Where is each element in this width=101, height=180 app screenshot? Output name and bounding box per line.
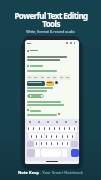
- staticText: Note Keep - Your Smart Notebook: [18, 170, 83, 175]
- button[interactable]: [23, 36, 80, 166]
- staticText: Powerful Text Editing Tools: [14, 10, 88, 29]
- staticText: Write, format & record audio: [26, 29, 75, 34]
- button[interactable]: [71, 149, 79, 157]
